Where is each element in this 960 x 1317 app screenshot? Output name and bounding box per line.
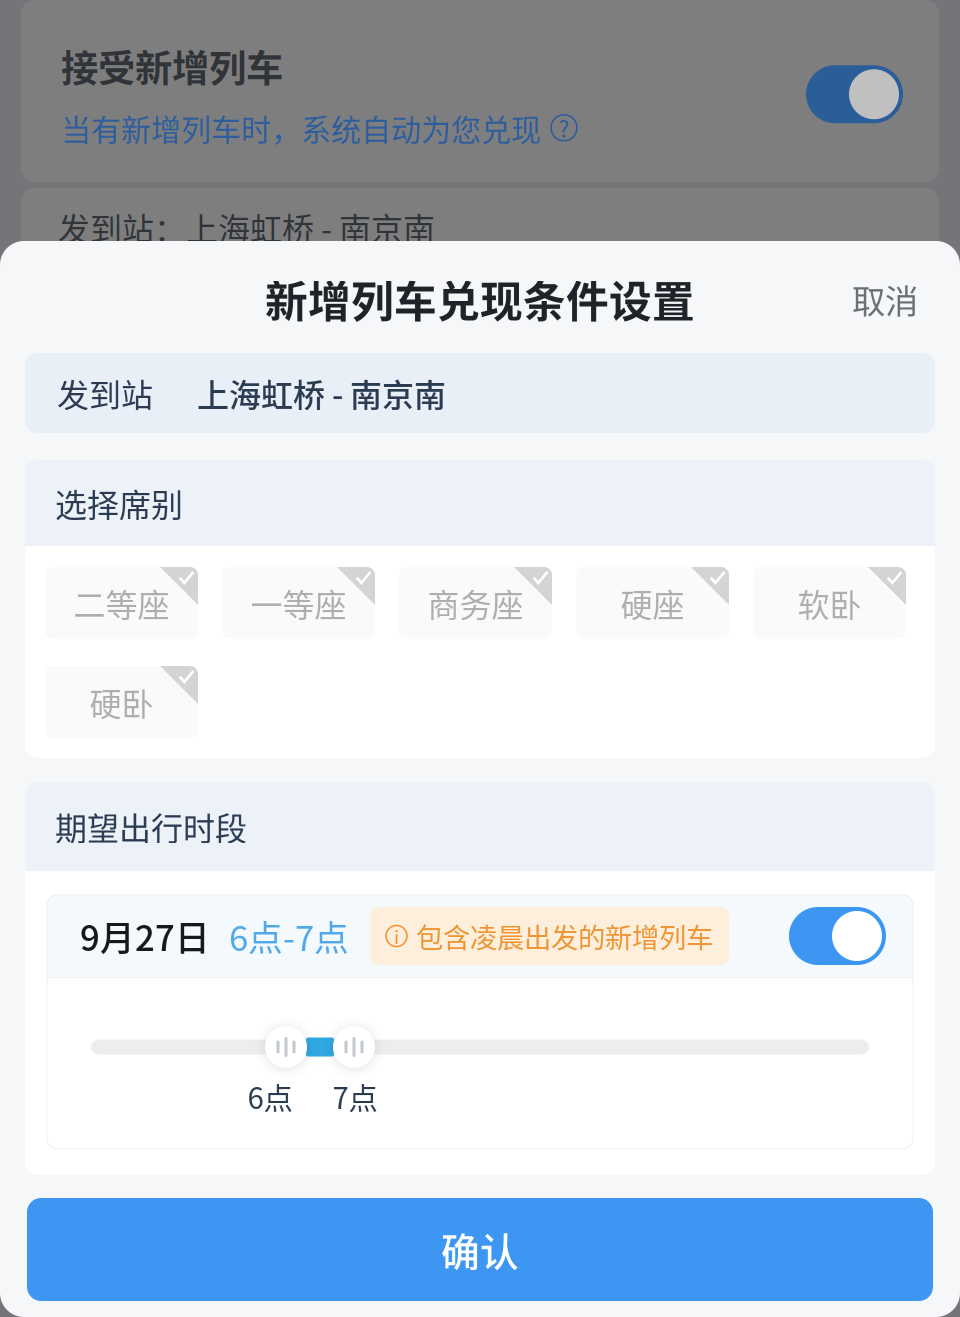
button[interactable]: 开关 (789, 907, 886, 965)
button[interactable]: 一等座 (222, 567, 375, 639)
staticText: 发到站：上海虹桥 - 南京南 (58, 204, 435, 250)
button[interactable]: 二等座 (45, 567, 198, 639)
staticText: 当有新增列车时，系统自动为您兑现 (61, 106, 541, 149)
button[interactable]: 时间滑块 (265, 1026, 307, 1068)
staticText: 新增列车兑现条件设置 (265, 268, 695, 330)
staticText: i (394, 922, 399, 949)
staticText: 6点-7点 (229, 911, 349, 961)
staticText: 接受新增列车 (61, 39, 283, 93)
staticText: 6点 (247, 1075, 292, 1117)
button[interactable]: 取消 (810, 257, 960, 341)
staticText: 上海虹桥 - 南京南 (197, 370, 446, 416)
staticText: 7点 (332, 1075, 377, 1117)
staticText: 期望出行时段 (55, 803, 247, 850)
staticText: 二等座 (73, 580, 169, 626)
staticText: 选择席别 (55, 480, 183, 526)
staticText: ? (558, 111, 569, 144)
staticText: 硬座 (620, 580, 684, 626)
button[interactable]: 商务座 (399, 567, 552, 639)
staticText: 发到站 (57, 370, 153, 416)
button[interactable]: 硬座 (576, 567, 729, 639)
button[interactable]: 开关 (806, 65, 903, 123)
staticText: 包含凌晨出发的新增列车 (416, 916, 713, 956)
staticText: 确认 (441, 1221, 519, 1277)
staticText: 商务座 (427, 580, 523, 626)
staticText: 软卧 (797, 580, 861, 626)
button[interactable]: 软卧 (753, 567, 906, 639)
button[interactable]: 时间滑块 (333, 1026, 375, 1068)
button[interactable]: 硬卧 (45, 666, 198, 738)
staticText: 硬卧 (89, 679, 153, 725)
staticText: 9月27日 (80, 911, 210, 961)
button[interactable]: 确认 (27, 1198, 933, 1301)
staticText: 一等座 (250, 580, 346, 626)
staticText: 取消 (852, 275, 918, 323)
